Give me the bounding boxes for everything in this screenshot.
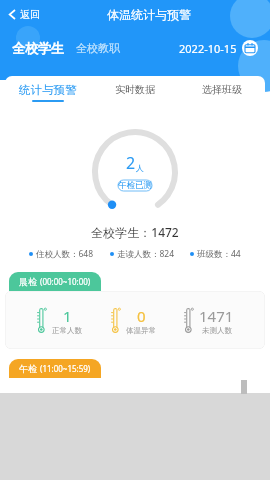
- staticText: 0: [137, 306, 146, 326]
- button[interactable]: 午检已测: [109, 178, 161, 193]
- button[interactable]: 午检: [9, 359, 101, 378]
- button[interactable]: 实时数据: [91, 83, 178, 101]
- staticText: 1471: [199, 306, 234, 326]
- staticText: 全校教职: [76, 41, 120, 55]
- staticText: 正常人数: [52, 326, 82, 335]
- button[interactable]: 统计与预警: [5, 83, 91, 102]
- staticText: 体温异常: [126, 326, 156, 335]
- staticText: (11:00~15:59): [40, 363, 91, 374]
- button[interactable]: 0: [110, 305, 156, 335]
- button[interactable]: 1471: [183, 305, 234, 335]
- staticText: 全校学生：1472: [5, 224, 265, 240]
- button[interactable]: 全校学生: [12, 36, 64, 60]
- staticText: 2: [126, 152, 136, 174]
- staticText: 实时数据: [115, 83, 155, 96]
- staticText: 住校人数：648: [36, 248, 94, 260]
- staticText: 选择班级: [202, 83, 242, 96]
- staticText: 未测人数: [202, 326, 232, 335]
- staticText: 晨检: [19, 276, 37, 287]
- staticText: 统计与预警: [19, 83, 77, 97]
- other: Pick date: [242, 40, 258, 56]
- button[interactable]: 2022-10-15: [179, 36, 258, 60]
- staticText: 体温统计与预警: [107, 7, 191, 22]
- button[interactable]: 1: [36, 305, 82, 335]
- staticText: 午检已测: [118, 180, 152, 191]
- staticText: 1: [63, 306, 72, 326]
- button[interactable]: 选择班级: [178, 83, 265, 101]
- staticText: 班级数：44: [197, 248, 241, 260]
- button[interactable]: 返回: [0, 4, 48, 25]
- staticText: 返回: [20, 8, 40, 21]
- staticText: 全校学生: [12, 40, 64, 56]
- button[interactable]: 晨检: [9, 272, 101, 291]
- button[interactable]: 全校教职: [76, 37, 120, 59]
- staticText: 人: [136, 163, 144, 173]
- staticText: (00:00~10:00): [40, 276, 91, 287]
- staticText: 午检: [19, 363, 37, 374]
- staticText: 走读人数：824: [117, 248, 175, 260]
- staticText: 2022-10-15: [179, 41, 237, 56]
